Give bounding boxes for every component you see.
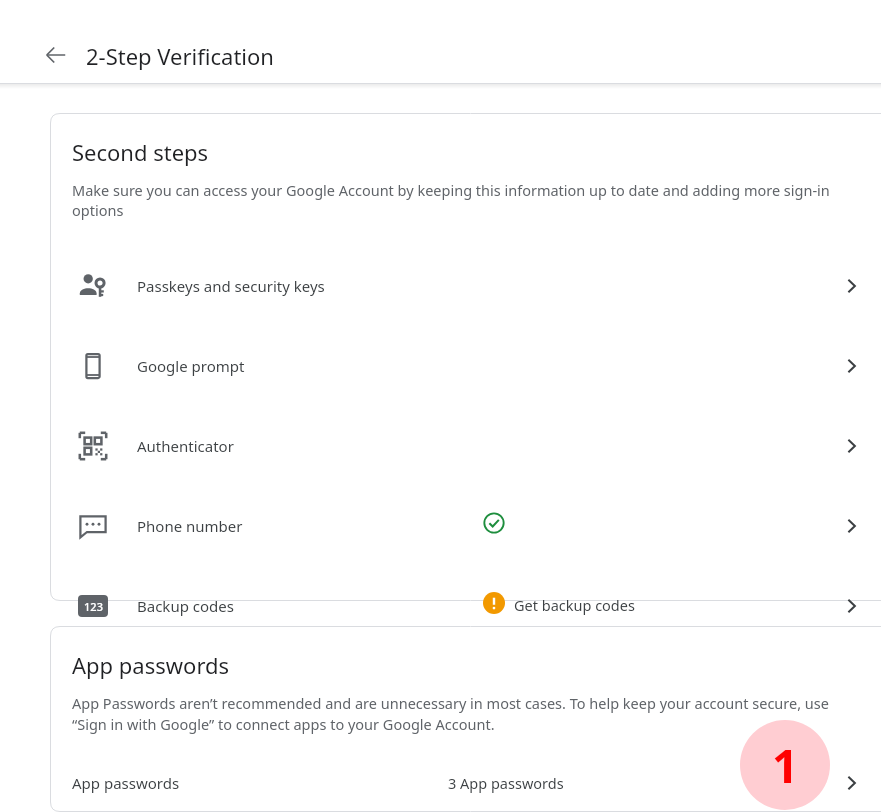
- button[interactable]: 123: [50, 566, 881, 601]
- button[interactable]: App passwords: [50, 755, 881, 812]
- button[interactable]: Passkeys and security keys: [50, 246, 881, 326]
- button[interactable]: Phone number: [50, 486, 881, 566]
- staticText: Authenticator: [137, 436, 234, 456]
- staticText: Passkeys and security keys: [137, 276, 325, 296]
- staticText: Get backup codes: [514, 595, 635, 615]
- staticText: 3 App passwords: [448, 773, 564, 793]
- staticText: App passwords: [72, 773, 180, 793]
- staticText: 1: [772, 734, 799, 797]
- staticText: App Passwords aren’t recommended and are…: [72, 693, 862, 735]
- staticText: Phone number: [137, 516, 243, 536]
- staticText: 2-Step Verification: [86, 41, 274, 71]
- staticText: Second steps: [72, 137, 209, 167]
- staticText: Make sure you can access your Google Acc…: [72, 180, 881, 220]
- button[interactable]: Google prompt: [50, 326, 881, 406]
- staticText: Google prompt: [137, 356, 245, 376]
- button[interactable]: Back: [36, 35, 76, 75]
- staticText: 123: [84, 599, 103, 614]
- button[interactable]: Authenticator: [50, 406, 881, 486]
- staticText: App passwords: [72, 650, 230, 680]
- staticText: Backup codes: [137, 596, 234, 616]
